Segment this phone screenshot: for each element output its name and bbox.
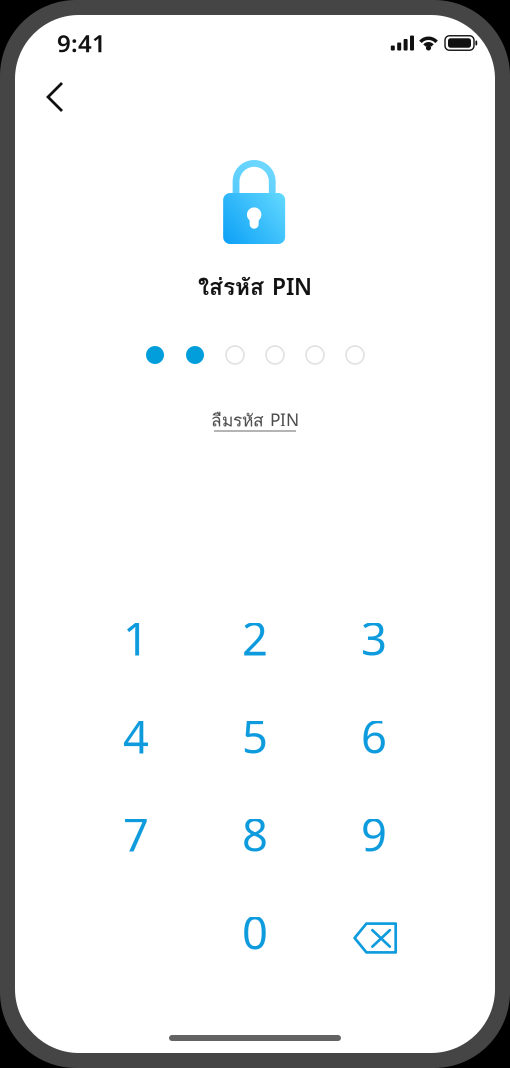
button[interactable]: 1 (86, 589, 186, 687)
button[interactable]: 7 (86, 785, 186, 883)
button[interactable]: 9 (324, 785, 424, 883)
staticText: 5 (242, 706, 268, 766)
staticText: ใส่รหัส PIN (198, 269, 312, 304)
staticText: 2 (242, 608, 268, 668)
staticText: 0 (242, 902, 268, 962)
button[interactable]: 3 (324, 589, 424, 687)
staticText: ลืมรหัส PIN (211, 407, 299, 434)
button[interactable]: 6 (324, 687, 424, 785)
button[interactable]: Delete (324, 883, 424, 981)
staticText: 4 (123, 706, 149, 766)
staticText: 3 (361, 608, 387, 668)
button[interactable]: 2 (205, 589, 305, 687)
button[interactable]: 4 (86, 687, 186, 785)
button[interactable]: Back (37, 66, 91, 128)
staticText: 8 (242, 804, 268, 864)
staticText: 7 (123, 804, 149, 864)
button[interactable]: ลืมรหัส PIN (15, 407, 495, 435)
staticText: 9:41 (57, 27, 106, 59)
button[interactable]: 8 (205, 785, 305, 883)
staticText: 6 (361, 706, 387, 766)
staticText: 9 (361, 804, 387, 864)
button[interactable]: 5 (205, 687, 305, 785)
button[interactable]: 0 (205, 883, 305, 981)
staticText: 1 (123, 608, 149, 668)
